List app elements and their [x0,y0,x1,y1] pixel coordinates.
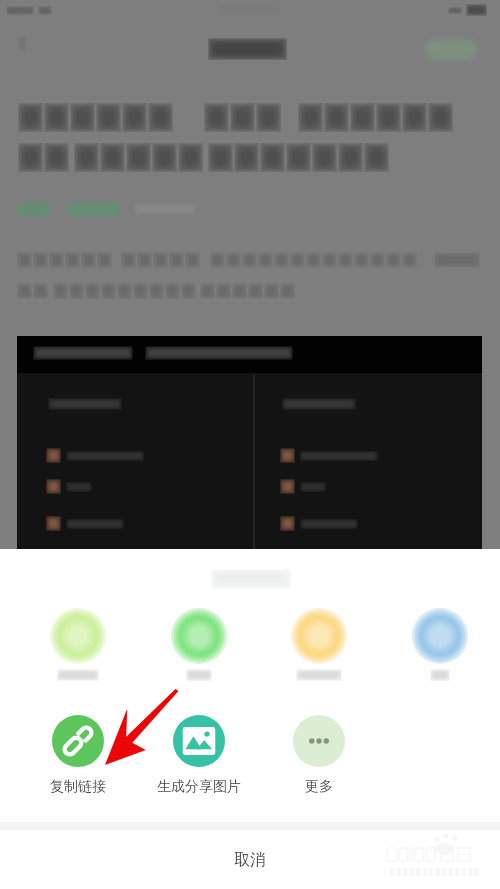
staticText: 生成分享图片 [157,778,241,796]
staticText: 更多 [305,778,333,796]
button[interactable]: Share [279,608,359,681]
button[interactable]: 复制链接 [18,715,138,796]
button[interactable]: 生成分享图片 [139,715,259,796]
staticText: 取消 [234,850,266,870]
button[interactable]: Share [159,608,239,681]
button[interactable]: Share [38,608,118,681]
button[interactable]: 取消 [0,830,500,889]
button[interactable]: 更多 [259,715,379,796]
button[interactable]: Share [400,608,480,681]
staticText: 复制链接 [50,778,106,796]
